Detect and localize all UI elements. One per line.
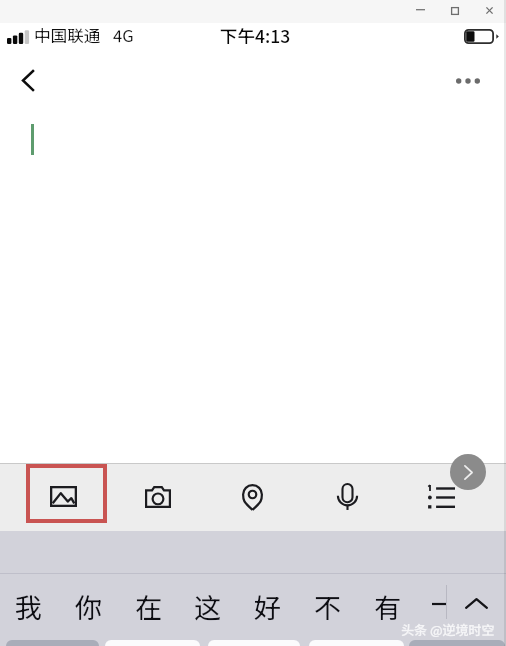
button[interactable]: Maximize bbox=[432, 0, 477, 23]
button[interactable]: Voice input bbox=[315, 464, 379, 530]
staticText: 下午4:13 bbox=[220, 23, 291, 48]
staticText: 在 bbox=[135, 587, 162, 623]
button[interactable] bbox=[6, 640, 99, 646]
staticText: 好 bbox=[254, 587, 281, 623]
staticText: 我 bbox=[15, 587, 42, 623]
button[interactable]: Collapse candidates bbox=[417, 585, 460, 621]
staticText: 有 bbox=[374, 587, 401, 623]
button[interactable]: Minimize bbox=[398, 0, 443, 23]
button[interactable]: More candidates bbox=[453, 585, 499, 621]
button[interactable] bbox=[105, 640, 200, 646]
staticText: 中国联通 bbox=[34, 23, 101, 47]
button[interactable]: 你 bbox=[58, 587, 118, 623]
button[interactable]: 我 bbox=[0, 587, 58, 623]
staticText: 头条 @逆境时空 bbox=[401, 620, 495, 639]
button[interactable]: 在 bbox=[118, 587, 178, 623]
button[interactable]: Formatting bbox=[409, 464, 473, 530]
button[interactable]: Insert image bbox=[26, 464, 107, 523]
staticText: 4G bbox=[113, 23, 134, 47]
button[interactable] bbox=[309, 640, 404, 646]
button[interactable]: More options bbox=[447, 60, 489, 102]
button[interactable]: 这 bbox=[177, 587, 237, 623]
button[interactable]: 有 bbox=[357, 587, 417, 623]
staticText: 不 bbox=[314, 587, 341, 623]
button[interactable]: 不 bbox=[297, 587, 357, 623]
button[interactable]: Note body bbox=[0, 105, 506, 463]
button[interactable]: 好 bbox=[237, 587, 297, 623]
button[interactable] bbox=[208, 640, 300, 646]
button[interactable]: Back bbox=[6, 58, 50, 102]
button[interactable]: Close bbox=[466, 0, 506, 23]
staticText: 你 bbox=[75, 587, 102, 623]
button[interactable]: Location bbox=[220, 464, 284, 530]
button[interactable]: Camera bbox=[126, 464, 190, 530]
button[interactable] bbox=[409, 640, 505, 646]
staticText: 这 bbox=[194, 587, 221, 623]
button[interactable]: Next bbox=[450, 454, 486, 490]
